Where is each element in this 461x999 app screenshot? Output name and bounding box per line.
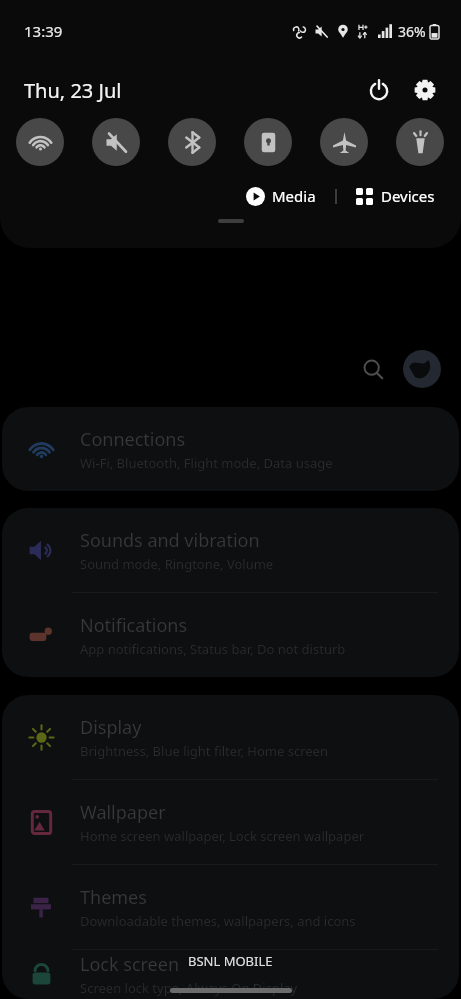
button[interactable]: Flight mode	[320, 118, 368, 166]
staticText: Home screen wallpaper, Lock screen wallp…	[80, 827, 365, 845]
button[interactable]: Notifications	[2, 593, 459, 677]
staticText: Display	[80, 715, 142, 740]
staticText: BSNL MOBILE	[188, 952, 273, 970]
button[interactable]: Sounds and vibration	[2, 508, 459, 592]
button[interactable]: Themes	[2, 865, 459, 949]
button[interactable]: Bluetooth	[168, 118, 216, 166]
staticText: Sounds and vibration	[80, 528, 260, 553]
button[interactable]: Connections	[2, 407, 459, 491]
staticText: Wallpaper	[80, 800, 166, 825]
button[interactable]: Mute	[92, 118, 140, 166]
button[interactable]: Settings	[403, 68, 447, 112]
staticText: Downloadable themes, wallpapers, and ico…	[80, 912, 356, 930]
button[interactable]: Secure Folder	[244, 118, 292, 166]
button[interactable]: Wallpaper	[2, 780, 459, 864]
button[interactable]: Samsung account profile	[403, 350, 441, 388]
button[interactable]: Power off	[357, 68, 401, 112]
staticText: Devices	[381, 186, 435, 206]
button[interactable]: Lock screen	[2, 950, 459, 999]
staticText: 13:39	[24, 21, 63, 41]
button[interactable]: Devices	[352, 182, 439, 210]
button[interactable]: Display	[2, 695, 459, 779]
staticText: Screen lock type, Always On Display	[80, 979, 298, 997]
staticText: Connections	[80, 427, 186, 452]
button[interactable]: Media	[242, 182, 320, 210]
staticText: 36%	[398, 22, 426, 41]
button[interactable]: Flashlight	[396, 118, 444, 166]
staticText: Wi-Fi, Bluetooth, Flight mode, Data usag…	[80, 454, 333, 472]
button[interactable]: Search settings	[353, 349, 393, 389]
staticText: Media	[272, 186, 316, 206]
staticText: App notifications, Status bar, Do not di…	[80, 640, 346, 658]
staticText: Brightness, Blue light filter, Home scre…	[80, 742, 328, 760]
staticText: Notifications	[80, 613, 188, 638]
staticText: Themes	[80, 885, 147, 910]
staticText: Sound mode, Ringtone, Volume	[80, 555, 274, 573]
staticText: Thu, 23 Jul	[24, 77, 122, 104]
staticText: Lock screen	[80, 952, 180, 977]
button[interactable]: Wi-Fi	[16, 118, 64, 166]
